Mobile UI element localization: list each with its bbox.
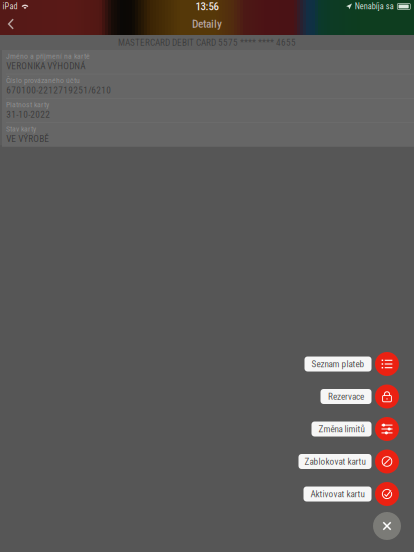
staticText: Detaily — [192, 17, 222, 31]
staticText: VERONIKA VÝHODNÁ — [6, 60, 85, 71]
staticText: iPad — [2, 2, 17, 11]
staticText: Zablokovat kartu — [304, 456, 365, 467]
button[interactable]: Close — [373, 512, 401, 540]
staticText: Nenabíja sa — [355, 2, 394, 11]
staticText: Číslo provázaného účtu — [6, 76, 80, 85]
staticText: MASTERCARD DEBIT CARD 5575 **** **** 465… — [118, 37, 296, 48]
staticText: Rezervace — [328, 391, 364, 402]
staticText: 31-10-2022 — [6, 109, 50, 120]
button[interactable]: Rezervace — [320, 389, 371, 404]
button[interactable]: Seznam plateb — [304, 356, 371, 371]
staticText: 13:56 — [195, 0, 218, 13]
button[interactable]: Změna limitů — [311, 421, 371, 436]
button[interactable]: Aktivovat kartu — [371, 482, 399, 506]
staticText: Aktivovat kartu — [310, 489, 364, 499]
staticText: Seznam plateb — [311, 359, 364, 369]
button[interactable]: Aktivovat kartu — [303, 486, 371, 501]
staticText: Stav karty — [6, 124, 36, 133]
staticText: Změna limitů — [318, 424, 364, 434]
staticText: Platnost karty — [6, 100, 49, 109]
button[interactable]: Seznam plateb — [371, 352, 399, 376]
button[interactable]: Back — [0, 17, 22, 31]
button[interactable]: Změna limitů — [371, 417, 399, 441]
button[interactable]: Zablokovat kartu — [298, 454, 371, 469]
button[interactable]: Rezervace — [371, 384, 399, 408]
staticText: Jméno a příjmení na kartě — [6, 51, 90, 61]
button[interactable]: Zablokovat kartu — [371, 449, 399, 473]
staticText: 670100-2212719251/6210 — [6, 85, 111, 96]
staticText: VE VÝROBĚ — [6, 133, 49, 144]
